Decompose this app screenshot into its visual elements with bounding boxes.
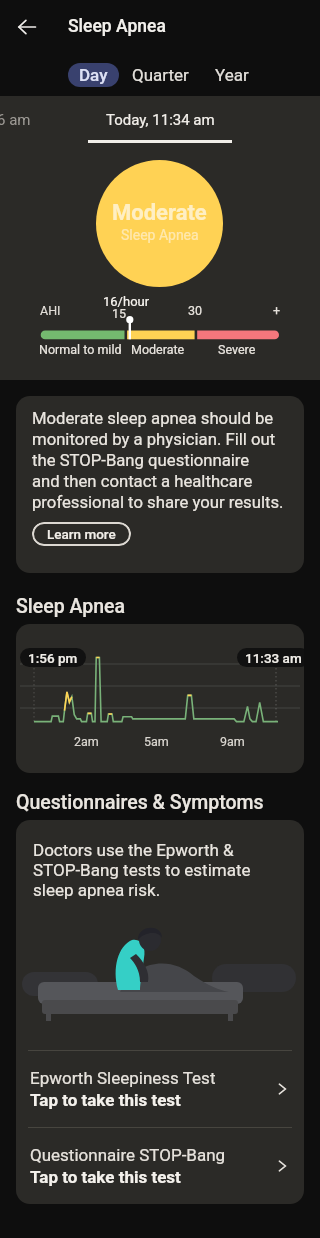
staticText: Tap to take this test [30, 1167, 181, 1187]
staticText: Year [215, 65, 249, 85]
button[interactable]: Back [10, 10, 43, 43]
staticText: Sleep Apnea [16, 595, 126, 618]
staticText: 15 [112, 306, 127, 321]
staticText: 1:56 pm [28, 650, 78, 666]
staticText: Moderate [112, 200, 207, 226]
staticText: Learn more [47, 526, 116, 542]
staticText: 16/hour [103, 294, 150, 309]
button[interactable]: Epworth Sleepiness Test [16, 1051, 304, 1127]
staticText: Quarter [132, 65, 189, 85]
staticText: + [273, 303, 281, 318]
staticText: Sleep Apnea [121, 227, 199, 243]
staticText: Moderate sleep apnea should be monitored… [32, 409, 284, 512]
button[interactable]: Year [202, 63, 262, 87]
staticText: Questionnaire STOP-Bang [30, 1145, 226, 1165]
staticText: 11:33 am [245, 650, 302, 666]
staticText: Questionnaires & Symptoms [16, 791, 264, 814]
staticText: 5am [144, 734, 169, 749]
button[interactable]: Learn more [32, 522, 131, 546]
staticText: Day [79, 65, 108, 85]
button[interactable]: Quarter [119, 63, 202, 87]
staticText: Epworth Sleepiness Test [30, 1068, 216, 1088]
button[interactable]: Day [68, 63, 119, 87]
staticText: Moderate [131, 342, 185, 357]
staticText: Normal to mild [39, 342, 122, 357]
button[interactable]: Yesterday, 9:06 am [0, 96, 40, 143]
staticText: Tap to take this test [30, 1090, 181, 1110]
button[interactable]: Questionnaire STOP-Bang [16, 1128, 304, 1204]
staticText: AHI [40, 303, 61, 318]
staticText: Doctors use the Epworth & STOP-Bang test… [33, 840, 251, 900]
staticText: Yesterday, 9:06 am [0, 111, 31, 129]
staticText: Sleep Apnea [68, 16, 166, 37]
button[interactable]: Today, 11:34 am [88, 96, 232, 143]
staticText: 9am [220, 734, 245, 749]
staticText: Today, 11:34 am [106, 111, 215, 129]
staticText: 30 [188, 303, 203, 318]
staticText: 2am [74, 734, 99, 749]
staticText: Severe [218, 342, 256, 357]
